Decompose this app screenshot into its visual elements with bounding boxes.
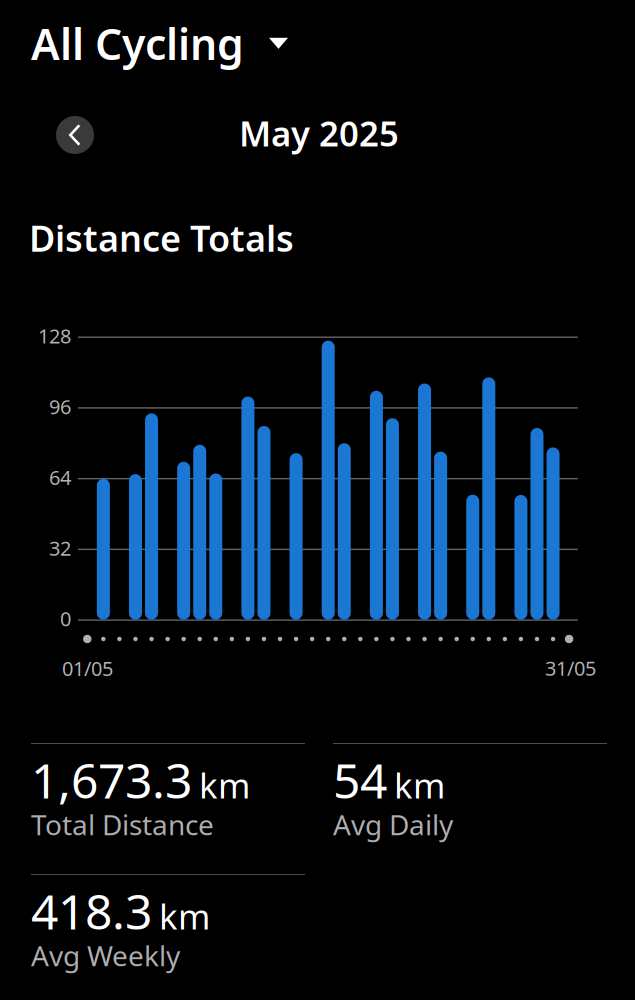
staticText: Avg Daily: [333, 806, 453, 843]
staticText: 64: [49, 464, 71, 490]
button[interactable]: Previous period: [46, 106, 104, 164]
staticText: 54: [333, 748, 387, 812]
staticText: Avg Weekly: [31, 937, 180, 974]
staticText: 0: [60, 605, 71, 632]
staticText: km: [394, 762, 445, 808]
staticText: 01/05: [62, 655, 113, 682]
staticText: 32: [49, 535, 71, 561]
button[interactable]: All Cycling: [0, 5, 319, 82]
staticText: km: [159, 893, 210, 939]
staticText: 96: [49, 393, 71, 420]
staticText: May 2025: [239, 110, 399, 156]
staticText: Distance Totals: [29, 214, 294, 262]
staticText: 418.3: [31, 879, 152, 943]
staticText: 128: [38, 322, 71, 349]
button[interactable]: May 2025: [194, 113, 444, 153]
staticText: 31/05: [545, 655, 596, 681]
staticText: km: [199, 762, 250, 808]
staticText: Total Distance: [31, 806, 214, 843]
staticText: 1,673.3: [31, 748, 192, 812]
staticText: All Cycling: [31, 15, 244, 72]
